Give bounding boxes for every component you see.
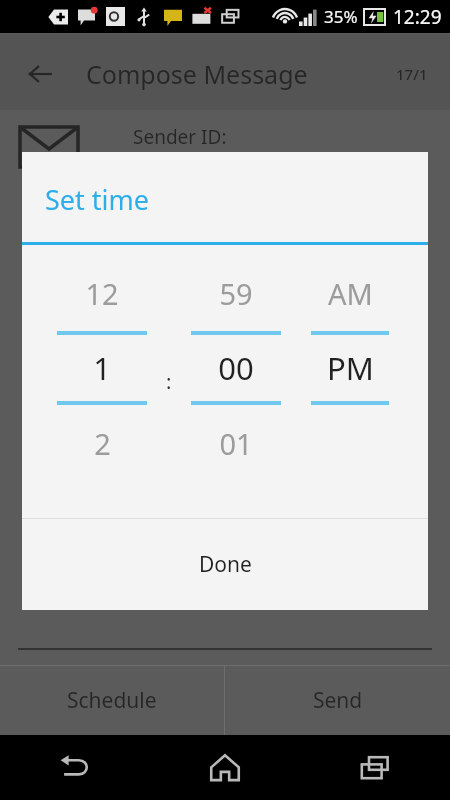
staticText: : [166, 368, 172, 395]
staticText: 17/1 [396, 64, 428, 84]
staticText: Send [313, 686, 363, 715]
button[interactable]: 12 [46, 245, 158, 518]
button[interactable]: Schedule [0, 665, 224, 735]
staticText: Sender ID: [133, 124, 227, 150]
button[interactable]: Send [225, 665, 450, 735]
staticText: 12:29 [393, 4, 442, 30]
staticText: AM [328, 274, 373, 313]
staticText: Set time [45, 181, 150, 218]
button[interactable]: AM [300, 245, 400, 518]
staticText: Compose Message [86, 57, 308, 91]
button[interactable]: Back [0, 735, 150, 800]
staticText: 12 [85, 274, 119, 313]
staticText: PM [327, 347, 374, 389]
button[interactable]: Home [150, 735, 300, 800]
button[interactable]: Back [18, 52, 62, 96]
button[interactable]: 59 [180, 245, 292, 518]
staticText: 35% [324, 5, 358, 28]
staticText: 59 [219, 274, 253, 313]
staticText: 01 [219, 424, 253, 463]
staticText: 2 [94, 424, 111, 463]
button[interactable]: Recent apps [300, 735, 450, 800]
staticText: 1 [93, 347, 111, 389]
button[interactable]: Done [22, 519, 428, 610]
staticText: 00 [218, 347, 254, 389]
staticText: Done [199, 550, 252, 579]
staticText: Schedule [67, 686, 157, 715]
